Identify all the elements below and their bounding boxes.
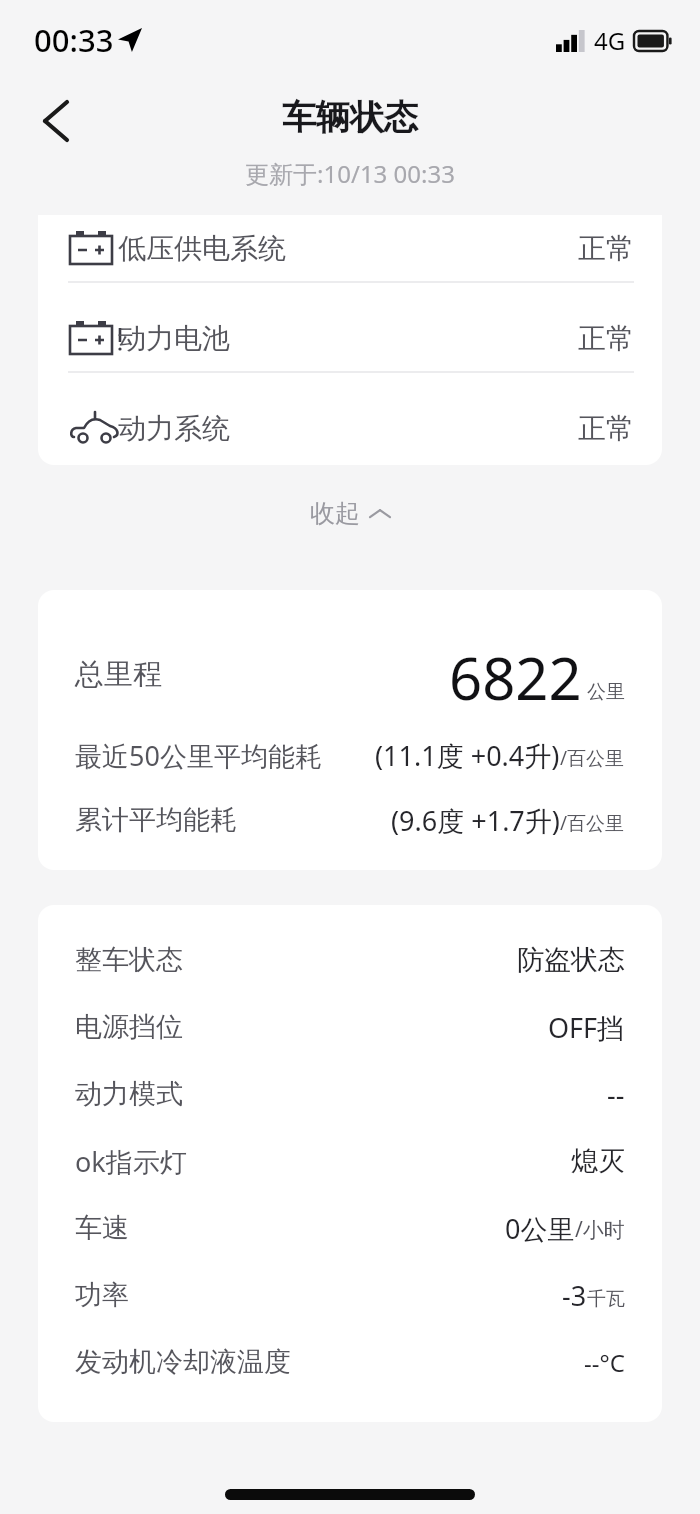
staticText: 正常	[578, 231, 634, 266]
button[interactable]: 车速	[38, 1203, 662, 1253]
staticText: 车速	[75, 1211, 129, 1245]
staticText: /小时	[575, 1215, 625, 1244]
staticText: 0公里	[505, 1210, 575, 1247]
button[interactable]: Back	[28, 93, 84, 149]
staticText: 累计平均能耗	[75, 803, 237, 837]
button[interactable]: 动力系统	[38, 395, 662, 461]
staticText: 动力电池	[118, 321, 230, 356]
staticText: 6822	[449, 638, 582, 710]
button[interactable]: 电源挡位	[38, 1002, 662, 1052]
staticText: ok指示灯	[75, 1143, 187, 1180]
staticText: 熄灭	[571, 1144, 625, 1178]
button[interactable]: 累计平均能耗	[38, 795, 662, 845]
staticText: 车辆状态	[282, 96, 418, 139]
staticText: 防盗状态	[517, 943, 625, 977]
staticText: 收起	[310, 498, 360, 529]
staticText: 整车状态	[75, 943, 183, 977]
staticText: 动力模式	[75, 1077, 183, 1111]
staticText: 千瓦	[587, 1287, 625, 1311]
staticText: OFF挡	[548, 1009, 625, 1046]
staticText: 功率	[75, 1278, 129, 1312]
staticText: 低压供电系统	[118, 231, 286, 266]
button[interactable]: 动力电池	[38, 305, 662, 371]
staticText: 公里	[587, 680, 625, 704]
button[interactable]: 功率	[38, 1270, 662, 1320]
staticText: 正常	[578, 411, 634, 446]
button[interactable]: 发动机冷却液温度	[38, 1337, 662, 1387]
button[interactable]: 最近50公里平均能耗	[38, 730, 662, 780]
staticText: -3	[562, 1277, 587, 1314]
button[interactable]: 收起	[0, 480, 700, 546]
staticText: 00:33	[34, 19, 114, 61]
button[interactable]: 总里程	[38, 638, 662, 710]
button[interactable]: 低压供电系统	[38, 215, 662, 281]
staticText: 更新于:10/13 00:33	[245, 157, 455, 190]
staticText: /百公里	[560, 810, 625, 836]
staticText: 发动机冷却液温度	[75, 1345, 291, 1379]
staticText: 动力系统	[118, 411, 230, 446]
staticText: /百公里	[560, 745, 625, 771]
button[interactable]: 整车状态	[38, 935, 662, 985]
staticText: (11.1度 +0.4升)	[375, 737, 560, 774]
staticText: --°C	[584, 1346, 625, 1379]
staticText: 电源挡位	[75, 1010, 183, 1044]
staticText: --	[607, 1076, 625, 1113]
button[interactable]: 动力模式	[38, 1069, 662, 1119]
button[interactable]: ok指示灯	[38, 1136, 662, 1186]
staticText: 4G	[594, 24, 626, 57]
staticText: 最近50公里平均能耗	[75, 737, 322, 774]
staticText: (9.6度 +1.7升)	[391, 802, 560, 839]
staticText: 总里程	[75, 656, 162, 693]
staticText: 正常	[578, 321, 634, 356]
